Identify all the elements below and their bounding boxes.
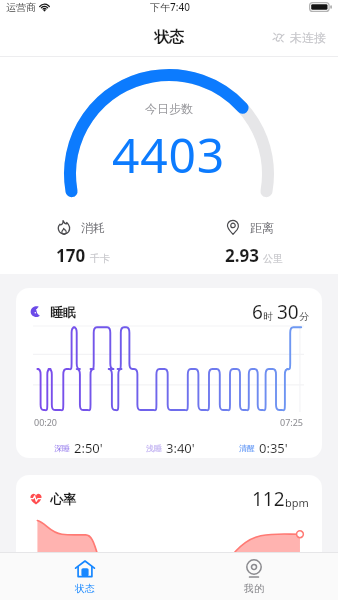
staticText: 深睡 <box>54 443 70 453</box>
staticText: 状态 <box>154 28 184 47</box>
other: 未连接 <box>272 31 285 44</box>
staticText: bpm <box>285 495 309 510</box>
button[interactable]: 心率 <box>16 475 322 595</box>
staticText: 4403 <box>112 122 226 187</box>
staticText: 下午7:40 <box>150 0 190 14</box>
staticText: 2:50' <box>74 439 103 457</box>
staticText: 时 <box>263 310 273 323</box>
staticText: 我的 <box>244 582 264 595</box>
button[interactable]: 状态 <box>0 553 169 600</box>
staticText: 6 <box>252 299 263 325</box>
button[interactable]: 睡眠 <box>16 288 322 458</box>
staticText: 清醒 <box>239 443 255 453</box>
button[interactable]: 我的 <box>169 553 338 600</box>
staticText: 距离 <box>250 220 274 235</box>
staticText: 状态 <box>75 582 95 595</box>
staticText: 170 <box>56 244 86 267</box>
button[interactable]: 未连接 <box>264 26 338 49</box>
staticText: 30 <box>277 299 299 325</box>
staticText: 运营商 <box>6 1 36 14</box>
button[interactable]: 消耗 <box>56 211 118 273</box>
staticText: 睡眠 <box>50 304 76 320</box>
staticText: 未连接 <box>290 30 326 45</box>
staticText: 分 <box>299 310 309 323</box>
staticText: 浅睡 <box>146 443 162 453</box>
other: 我的 <box>244 559 264 579</box>
staticText: 今日步数 <box>145 101 193 116</box>
staticText: 心率 <box>50 491 76 507</box>
staticText: 消耗 <box>81 220 105 235</box>
staticText: 公里 <box>263 252 283 265</box>
staticText: 00:20 <box>34 416 58 428</box>
other: 状态 <box>75 559 95 579</box>
button[interactable]: 距离 <box>225 211 291 273</box>
staticText: 千卡 <box>90 252 110 265</box>
staticText: 07:25 <box>280 416 304 428</box>
staticText: 2.93 <box>225 244 259 267</box>
staticText: 3:40' <box>166 439 195 457</box>
staticText: 0:35' <box>259 439 288 457</box>
staticText: 112 <box>252 486 285 512</box>
